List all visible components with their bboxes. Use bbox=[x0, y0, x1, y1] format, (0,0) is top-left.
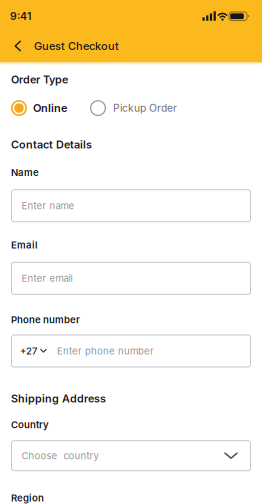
staticText: Email bbox=[11, 239, 38, 251]
button[interactable]: Enter phone number bbox=[11, 334, 251, 367]
button[interactable]: Pickup Order bbox=[68, 100, 177, 116]
button[interactable]: Back bbox=[0, 30, 28, 62]
button[interactable]: Choose country bbox=[11, 440, 251, 471]
staticText: Contact Details bbox=[11, 138, 92, 151]
staticText: Country bbox=[11, 419, 49, 431]
staticText: +27 bbox=[20, 345, 37, 357]
staticText: 9:41 bbox=[10, 10, 31, 23]
staticText: Name bbox=[11, 167, 39, 178]
staticText: Enter name bbox=[21, 200, 74, 211]
button[interactable]: Online bbox=[11, 100, 68, 116]
staticText: Online bbox=[33, 101, 68, 115]
button[interactable]: Enter email bbox=[11, 262, 251, 295]
staticText: Choose country bbox=[21, 450, 98, 461]
staticText: Pickup Order bbox=[113, 102, 177, 114]
staticText: Order Type bbox=[11, 73, 68, 86]
staticText: Shipping Address bbox=[11, 392, 106, 405]
staticText: Enter email bbox=[21, 273, 72, 284]
staticText: Phone number bbox=[11, 314, 80, 325]
staticText: Guest Checkout bbox=[34, 39, 119, 53]
staticText: Enter phone number bbox=[57, 345, 154, 357]
button[interactable]: Enter name bbox=[11, 189, 251, 222]
staticText: Region bbox=[11, 492, 44, 504]
